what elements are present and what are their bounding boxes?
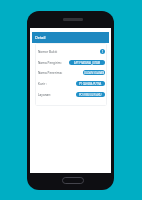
button[interactable]: Nama Pengirim:: [38, 60, 105, 65]
staticText: PCS REGULER AKU: [79, 93, 102, 97]
button[interactable]: Kurir :: [38, 81, 105, 86]
staticText: 1: [102, 50, 104, 54]
button[interactable]: Nomor Bukti:: [38, 49, 105, 54]
button[interactable]: Nama Penerima:: [38, 70, 105, 75]
staticText: PT CAHAYA PUTRA: [79, 82, 102, 86]
staticText: Kurir :: [38, 82, 47, 86]
button[interactable]: Detail: [32, 32, 109, 43]
button[interactable]: Layanan:: [38, 92, 105, 97]
staticText: Detail: [35, 35, 46, 40]
staticText: Layanan:: [38, 93, 52, 97]
staticText: OLOAN SILABAN: [84, 71, 105, 75]
staticText: APT PRATAMA, JOTAM: [74, 61, 101, 65]
staticText: Nomor Bukti:: [38, 50, 58, 54]
button[interactable]: Home: [62, 177, 84, 184]
staticText: Nama Pengirim:: [38, 61, 62, 65]
staticText: Nama Penerima:: [38, 71, 63, 75]
